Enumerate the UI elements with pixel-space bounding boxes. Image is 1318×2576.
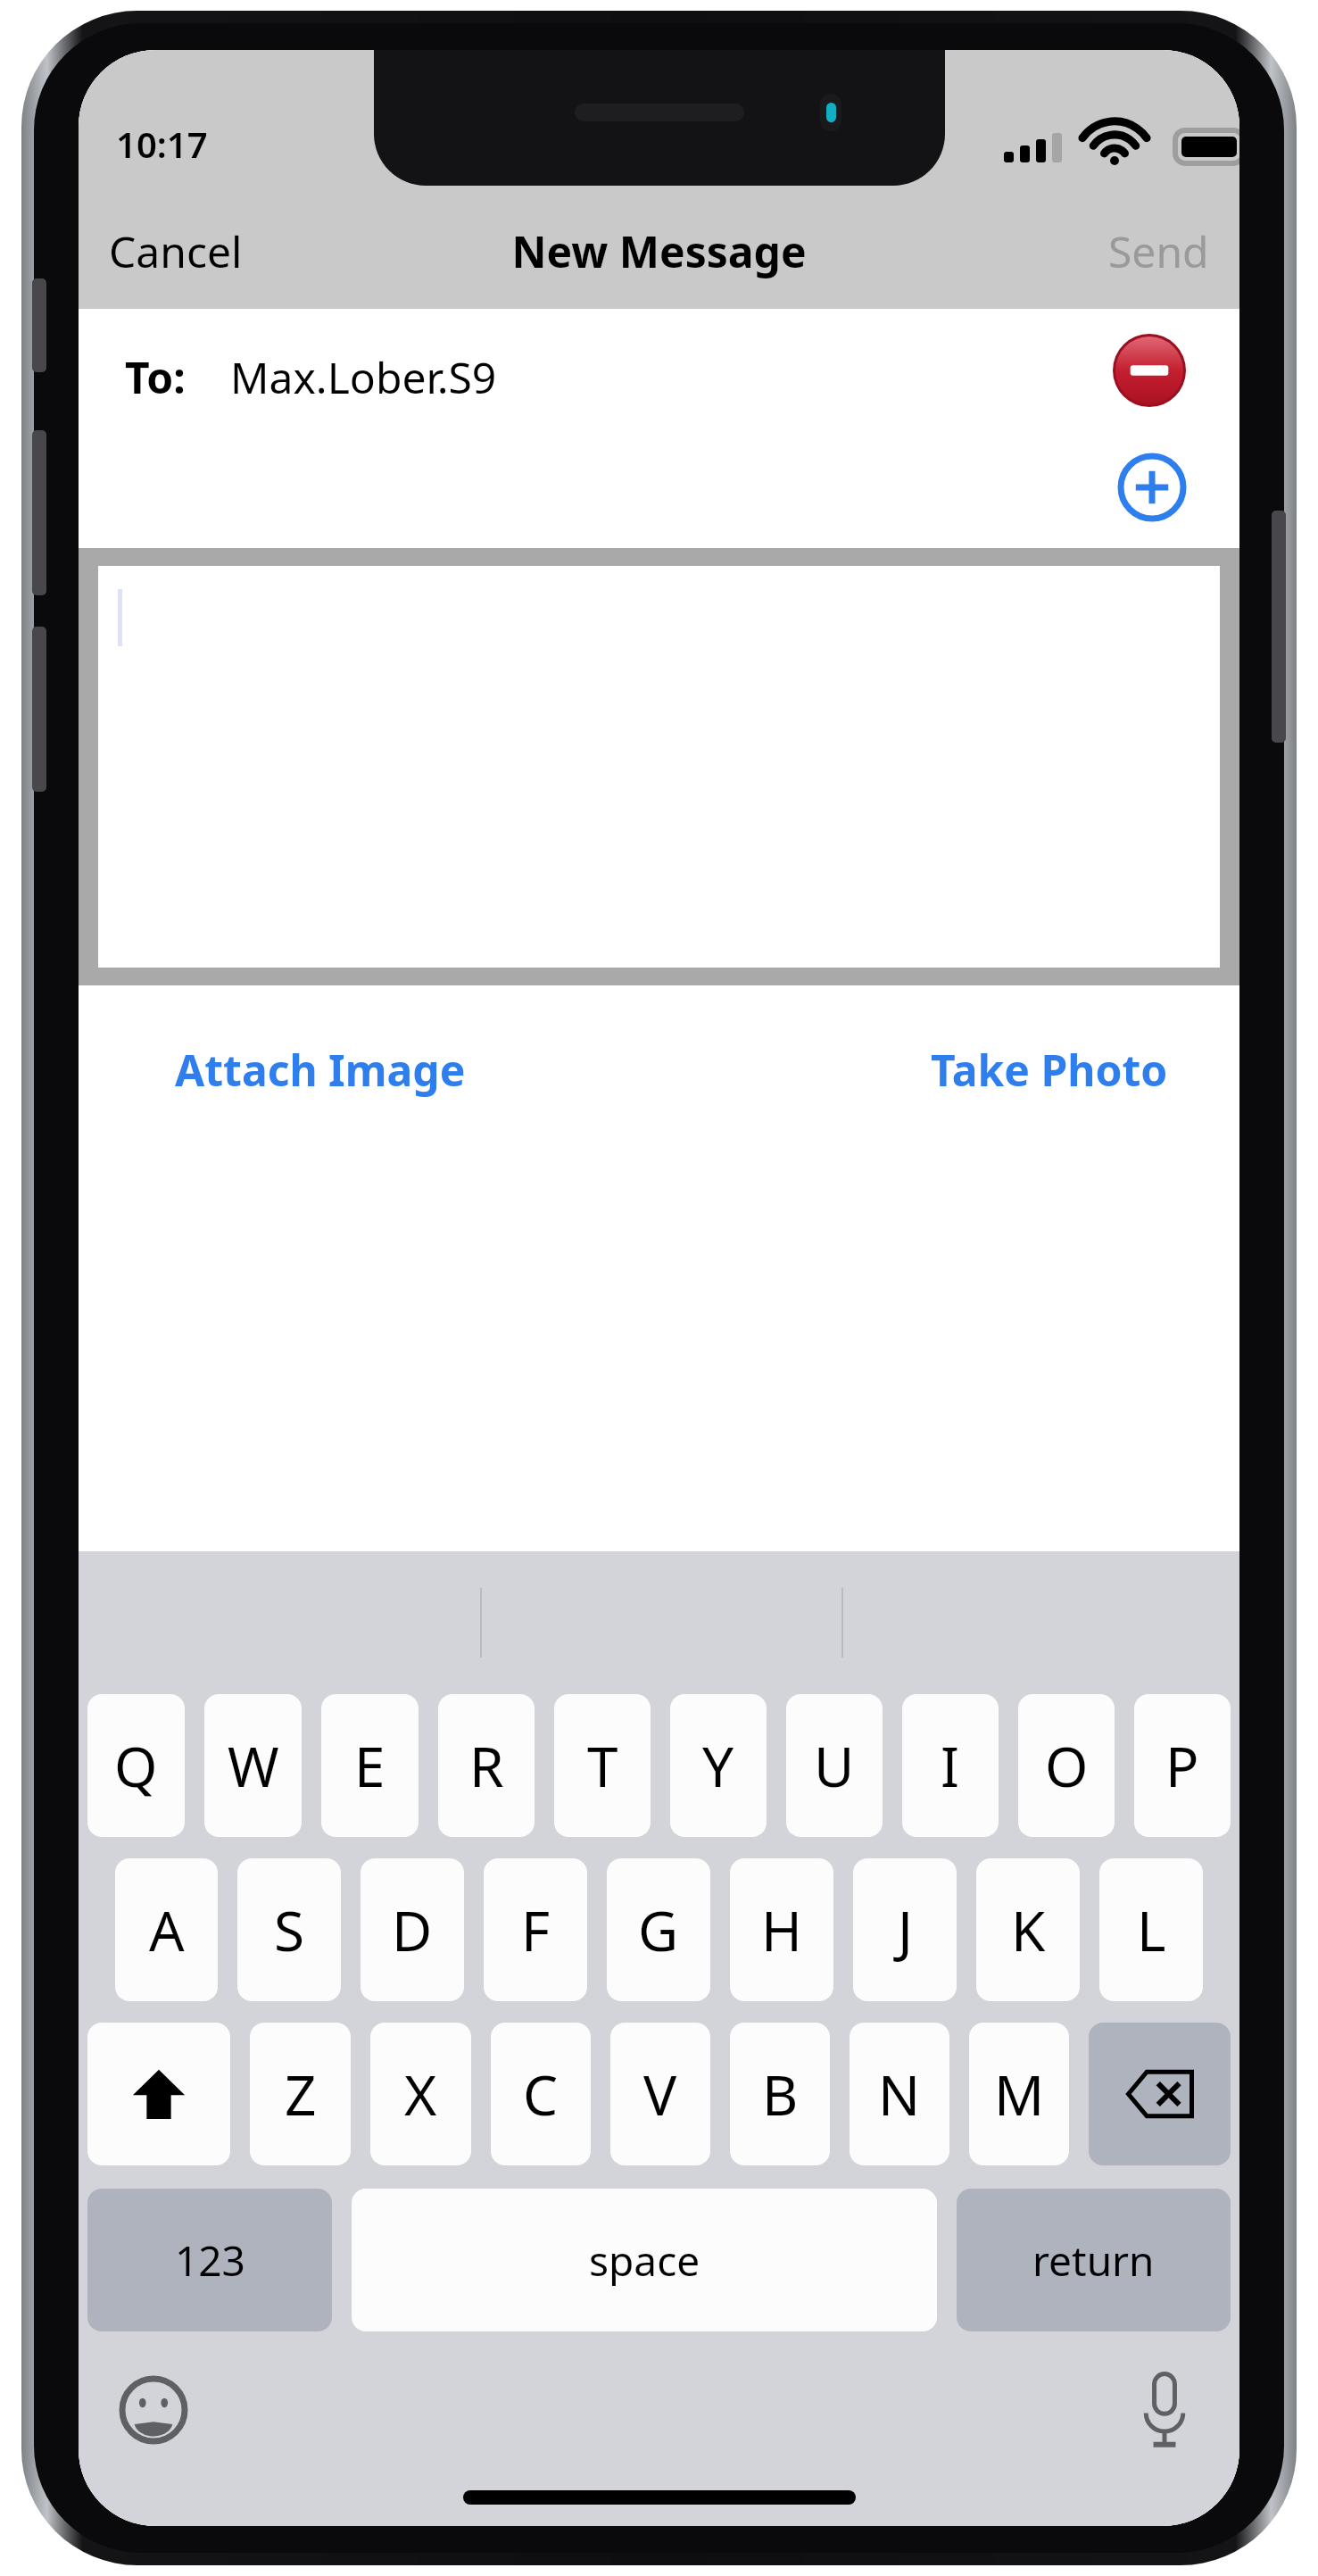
button[interactable]: L <box>1099 1858 1203 2001</box>
button[interactable]: Shift <box>87 2023 230 2165</box>
staticText: F <box>521 1892 551 1967</box>
button[interactable]: E <box>321 1694 419 1837</box>
button[interactable]: U <box>786 1694 883 1837</box>
button[interactable]: T <box>554 1694 651 1837</box>
staticText: W <box>228 1728 279 1803</box>
staticText: 10:17 <box>116 120 208 168</box>
button[interactable]: Add recipient <box>1116 452 1188 523</box>
button[interactable]: Backspace <box>1089 2023 1231 2165</box>
button[interactable]: J <box>853 1858 957 2001</box>
button[interactable]: V <box>610 2023 710 2165</box>
staticText: A <box>149 1892 185 1967</box>
button[interactable]: Send <box>807 193 1239 309</box>
button[interactable]: A <box>115 1858 218 2001</box>
button[interactable]: Attach Image <box>168 1034 473 1106</box>
staticText: Send <box>1108 222 1209 280</box>
staticText: I <box>941 1728 960 1803</box>
staticText: U <box>814 1728 855 1803</box>
staticText: O <box>1045 1728 1089 1803</box>
staticText: P <box>1165 1728 1199 1803</box>
button[interactable]: 123 <box>87 2189 332 2331</box>
button[interactable]: W <box>204 1694 302 1837</box>
button[interactable]: N <box>850 2023 949 2165</box>
staticText: N <box>878 2057 921 2131</box>
button[interactable]: B <box>730 2023 830 2165</box>
button[interactable]: X <box>370 2023 471 2165</box>
staticText: G <box>638 1892 679 1967</box>
button[interactable]: R <box>438 1694 535 1837</box>
staticText: R <box>469 1728 504 1803</box>
staticText: 123 <box>175 2232 245 2289</box>
button[interactable]: C <box>491 2023 591 2165</box>
staticText: S <box>274 1892 305 1967</box>
staticText: E <box>354 1728 385 1803</box>
staticText: V <box>643 2057 677 2131</box>
staticText: Y <box>702 1728 734 1803</box>
staticText: J <box>898 1892 913 1967</box>
staticText: X <box>404 2057 437 2131</box>
button[interactable]: Y <box>670 1694 767 1837</box>
staticText: Attach Image <box>175 1041 466 1099</box>
button[interactable]: return <box>957 2189 1231 2331</box>
button[interactable]: Remove recipient <box>1111 332 1188 409</box>
button[interactable]: S <box>237 1858 341 2001</box>
staticText: Max.Lober.S9 <box>230 348 497 406</box>
button[interactable]: Take Photo <box>924 1034 1175 1106</box>
staticText: To: <box>125 348 186 406</box>
staticText: Q <box>114 1728 158 1803</box>
button[interactable]: O <box>1018 1694 1115 1837</box>
staticText: space <box>589 2232 700 2289</box>
button[interactable]: H <box>730 1858 833 2001</box>
button[interactable]: Q <box>87 1694 185 1837</box>
button[interactable]: Dictation <box>1122 2367 1207 2453</box>
staticText: K <box>1011 1892 1046 1967</box>
button[interactable]: Emoji keyboard <box>111 2367 196 2453</box>
button[interactable]: Cancel <box>79 193 511 309</box>
staticText: Take Photo <box>931 1041 1168 1099</box>
button[interactable]: K <box>976 1858 1080 2001</box>
staticText: New Message <box>511 222 807 280</box>
button[interactable]: D <box>361 1858 464 2001</box>
staticText: H <box>761 1892 802 1967</box>
staticText: C <box>523 2057 559 2131</box>
button[interactable]: space <box>352 2189 937 2331</box>
staticText: return <box>1032 2232 1155 2289</box>
button[interactable]: Z <box>250 2023 351 2165</box>
staticText: D <box>392 1892 433 1967</box>
button[interactable]: F <box>484 1858 587 2001</box>
staticText: L <box>1137 1892 1166 1967</box>
button[interactable]: G <box>607 1858 710 2001</box>
staticText: Z <box>285 2057 317 2131</box>
button[interactable]: P <box>1134 1694 1231 1837</box>
staticText: T <box>587 1728 618 1803</box>
staticText: Cancel <box>109 222 243 280</box>
button[interactable]: M <box>969 2023 1069 2165</box>
staticText: B <box>762 2057 799 2131</box>
button[interactable]: I <box>902 1694 999 1837</box>
staticText: M <box>994 2057 1045 2131</box>
